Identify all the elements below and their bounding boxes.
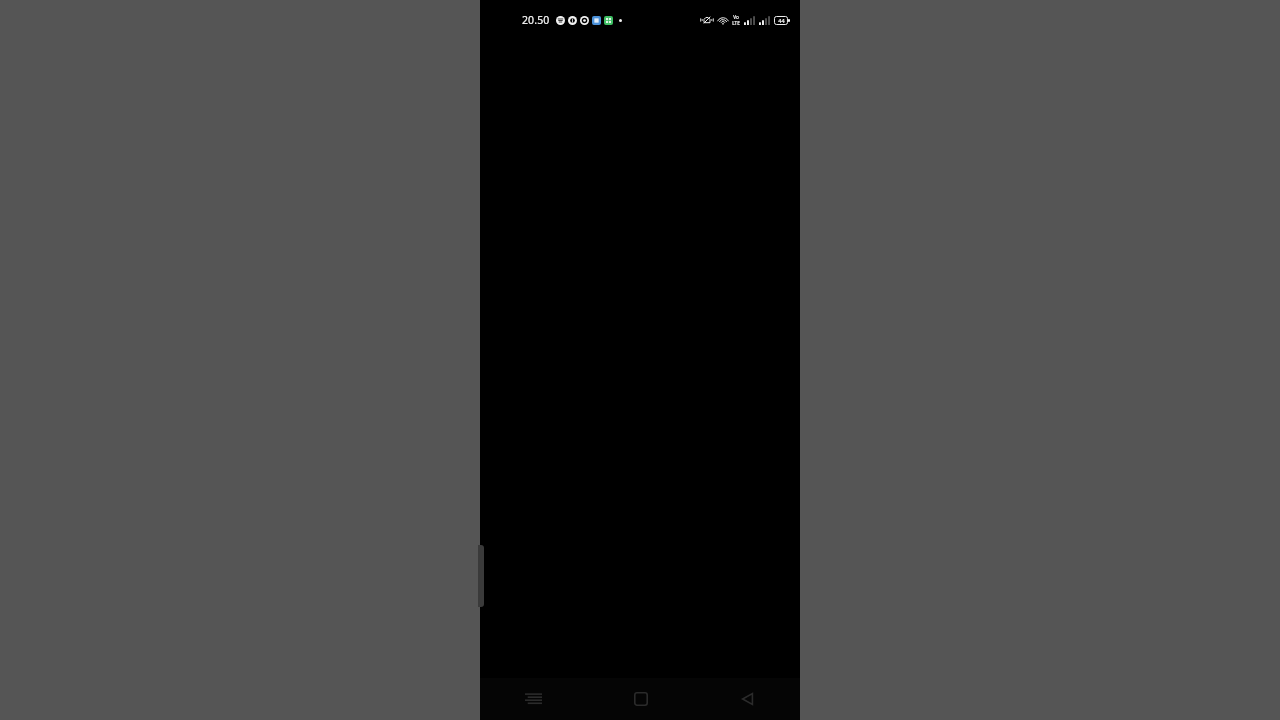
staticText: 20.50 [522,13,550,27]
staticText: 44 [778,17,785,25]
button[interactable]: Back [694,678,800,720]
button[interactable]: Drag handle [478,545,484,607]
button[interactable]: Home [587,678,694,720]
staticText: Vo [733,14,739,20]
staticText: LTE [732,20,740,26]
button[interactable]: Recent apps [480,678,587,720]
